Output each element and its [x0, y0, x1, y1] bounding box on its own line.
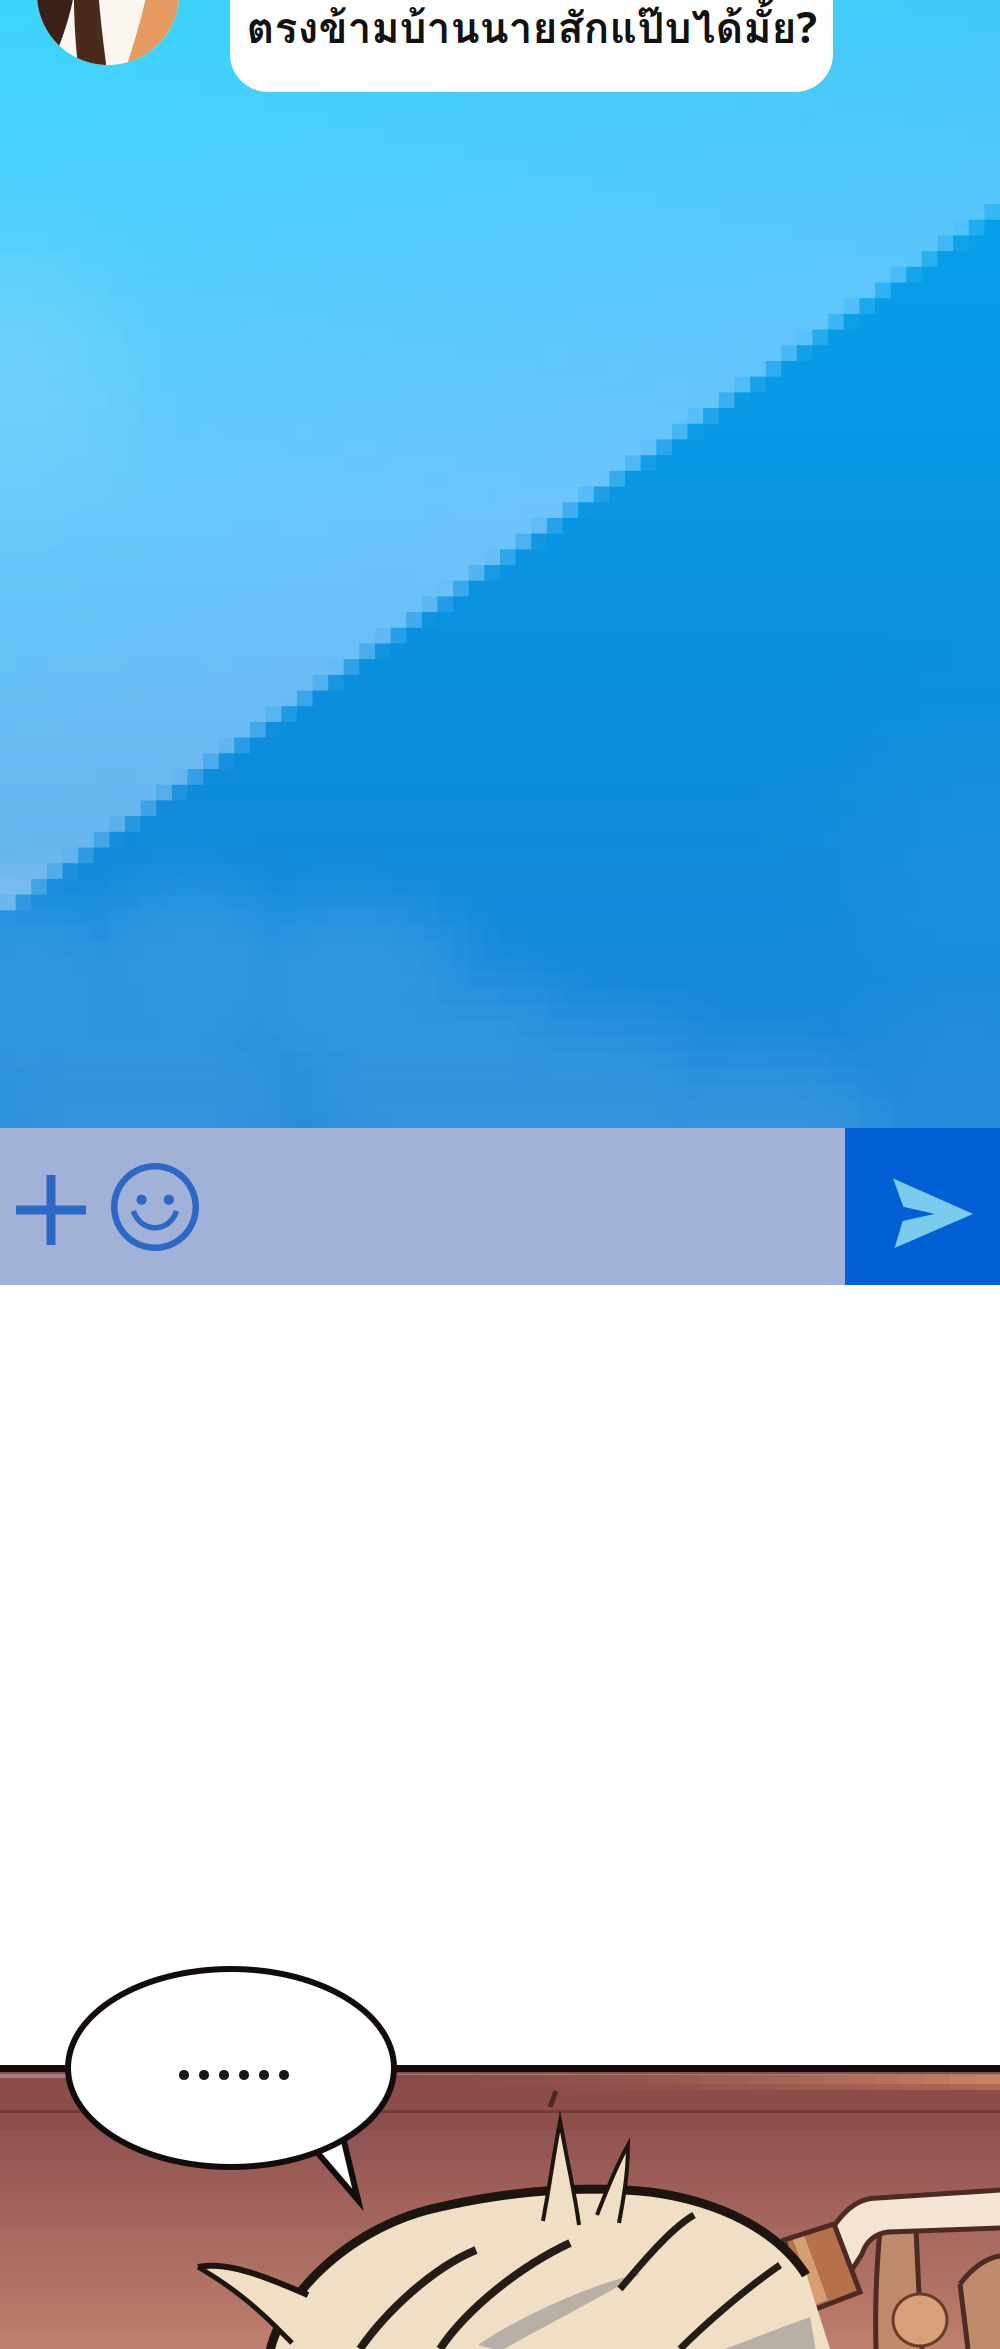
- button[interactable]: Add attachment: [0, 1128, 104, 1285]
- staticText: ตรงข้ามบ้านนายสักแป๊บได้มั้ย?: [246, 0, 816, 61]
- button[interactable]: Send: [845, 1128, 1000, 1285]
- button[interactable]: Emoji: [104, 1128, 214, 1285]
